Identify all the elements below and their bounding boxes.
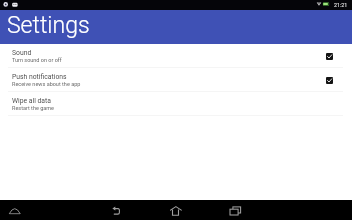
staticText: Settings — [7, 12, 90, 39]
button[interactable]: Wipe all data — [0, 92, 352, 116]
button[interactable]: Recent apps — [226, 200, 244, 220]
button[interactable]: Push notifications — [0, 68, 352, 92]
staticText: Receive news about the app — [12, 81, 81, 87]
staticText: Push notifications — [12, 73, 67, 81]
button[interactable]: Back — [108, 200, 124, 220]
staticText: Restart the game — [12, 105, 55, 111]
staticText: 21:21 — [334, 2, 348, 8]
staticText: Turn sound on or off — [12, 57, 62, 63]
staticText: Wipe all data — [12, 97, 51, 105]
button[interactable]: Toggle Push notifications — [326, 77, 333, 84]
button[interactable]: Toggle Sound — [326, 53, 333, 60]
staticText: Sound — [12, 49, 32, 57]
button[interactable]: Sound — [0, 44, 352, 68]
button[interactable]: Open small apps — [5, 200, 25, 220]
button[interactable]: Home — [167, 200, 183, 220]
